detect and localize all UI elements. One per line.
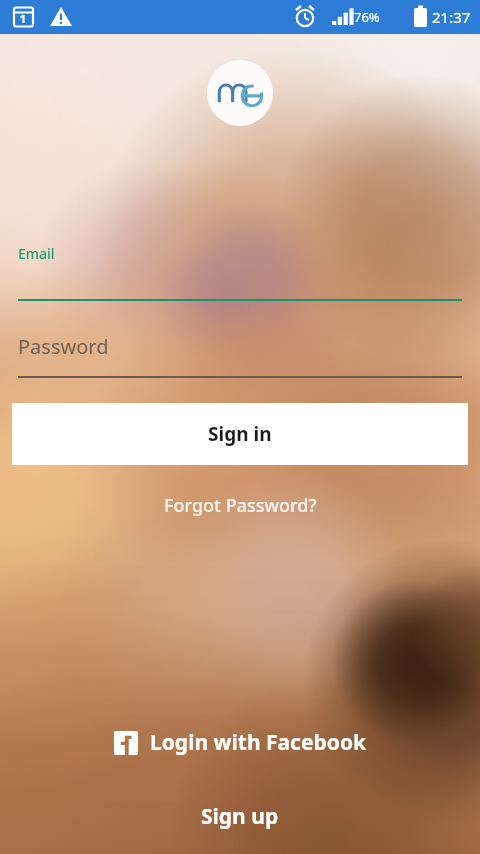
staticText: Password (18, 333, 109, 360)
staticText: Sign in (208, 421, 272, 447)
staticText: Forgot Password? (164, 493, 317, 518)
button[interactable]: Sign in (12, 403, 468, 465)
staticText: Email (18, 244, 55, 263)
staticText: Sign up (201, 802, 279, 831)
button[interactable]: Sign up (183, 797, 297, 836)
button[interactable]: Facebook (0, 718, 480, 767)
other: Facebook (114, 731, 138, 755)
staticText: 76% (354, 8, 380, 26)
button[interactable]: Forgot Password? (150, 487, 331, 524)
staticText: Login with Facebook (150, 728, 367, 757)
staticText: 21:37 (432, 7, 471, 27)
